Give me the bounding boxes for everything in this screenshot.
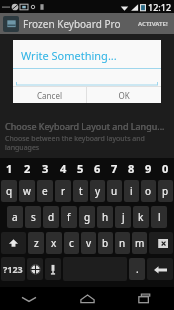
staticText: Cancel (37, 90, 62, 101)
button[interactable]: j (115, 206, 131, 228)
staticText: 7 (111, 161, 118, 176)
staticText: s (31, 210, 36, 224)
button[interactable]: Recents (116, 287, 174, 310)
button[interactable]: 0 (157, 158, 174, 178)
button[interactable]: x (46, 232, 62, 254)
button[interactable]: p (158, 180, 173, 202)
button[interactable]: Shift (1, 232, 26, 254)
button[interactable]: 2 (18, 158, 36, 178)
button[interactable]: r (55, 180, 71, 202)
button[interactable]: k (133, 206, 149, 228)
button[interactable]: m (132, 232, 147, 254)
button[interactable]: f (61, 206, 77, 228)
staticText: Choose Keyboard Layout and Langu... (5, 120, 165, 132)
staticText: u (111, 184, 118, 198)
staticText: t (79, 184, 83, 198)
button[interactable]: q (1, 180, 17, 202)
staticText: 4 (60, 161, 67, 176)
button[interactable]: ACTIVATE! (135, 18, 171, 30)
button[interactable]: b (98, 232, 113, 254)
button[interactable]: e (37, 180, 53, 202)
staticText: j (122, 210, 125, 224)
button[interactable]: u (107, 180, 122, 202)
button[interactable]: 8 (123, 158, 140, 178)
staticText: g (84, 210, 91, 224)
button[interactable]: Voice input (45, 258, 61, 280)
staticText: 9 (145, 161, 152, 176)
staticText: r (61, 184, 66, 198)
staticText: o (145, 184, 152, 198)
staticText: d (48, 210, 55, 224)
button[interactable]: s (25, 206, 41, 228)
staticText: Choose between the keyboard layouts and … (5, 134, 169, 152)
button[interactable]: 6 (89, 158, 106, 178)
staticText: f (67, 210, 71, 224)
button[interactable]: y (90, 180, 105, 202)
staticText: h (102, 210, 109, 224)
button[interactable]: 1 (0, 158, 18, 178)
staticText: ?123 (3, 263, 23, 275)
button[interactable]: 3 (36, 158, 54, 178)
button[interactable]: Hide keyboard (0, 287, 58, 310)
staticText: b (102, 236, 109, 250)
staticText: 1 (6, 161, 13, 176)
button[interactable]: i (124, 180, 139, 202)
button[interactable]: w (19, 180, 35, 202)
button[interactable]: . (129, 258, 145, 280)
other: Shift (8, 238, 19, 249)
staticText: q (6, 184, 13, 198)
staticText: 0 (162, 161, 169, 176)
staticText: Write Something... (21, 48, 117, 63)
staticText: y (95, 184, 101, 198)
staticText: l (158, 210, 161, 224)
staticText: x (51, 236, 57, 250)
staticText: k (138, 210, 144, 224)
button[interactable]: t (73, 180, 88, 202)
button[interactable]: n (115, 232, 130, 254)
staticText: 12:12 (148, 1, 172, 13)
staticText: n (119, 236, 126, 250)
staticText: z (34, 236, 39, 250)
button[interactable]: 9 (140, 158, 157, 178)
staticText: 8 (128, 161, 135, 176)
button[interactable]: o (141, 180, 156, 202)
other: Delete (154, 239, 168, 248)
staticText: i (130, 184, 133, 198)
button[interactable]: z (28, 232, 44, 254)
staticText: ACTIVATE! (138, 20, 168, 28)
button[interactable]: ?123 (1, 257, 25, 281)
button[interactable]: 4 (54, 158, 72, 178)
staticText: 6 (94, 161, 101, 176)
staticText: c (69, 236, 74, 250)
button[interactable]: 7 (106, 158, 123, 178)
button[interactable]: d (43, 206, 59, 228)
button[interactable]: l (151, 206, 167, 228)
button[interactable]: Cancel (13, 87, 86, 103)
staticText: a (12, 210, 18, 224)
staticText: e (42, 184, 48, 198)
button[interactable]: a (7, 206, 23, 228)
staticText: Frozen Keyboard Pro (23, 17, 135, 31)
button[interactable]: 5 (72, 158, 89, 178)
button[interactable]: v (81, 232, 96, 254)
staticText: v (86, 236, 92, 250)
button[interactable]: g (79, 206, 95, 228)
button[interactable]: Language (27, 258, 43, 280)
button[interactable]: h (97, 206, 113, 228)
staticText: 5 (77, 161, 84, 176)
staticText: 2 (24, 161, 31, 176)
button[interactable]: c (64, 232, 79, 254)
button[interactable]: Delete (149, 232, 173, 254)
button[interactable]: OK (87, 87, 161, 103)
staticText: . (136, 262, 139, 276)
button[interactable]: Enter (147, 258, 173, 280)
staticText: OK (118, 90, 130, 101)
staticText: w (23, 184, 31, 198)
button[interactable]: Home (58, 287, 116, 310)
staticText: 3 (42, 161, 49, 176)
staticText: m (135, 236, 145, 250)
staticText: p (162, 184, 169, 198)
